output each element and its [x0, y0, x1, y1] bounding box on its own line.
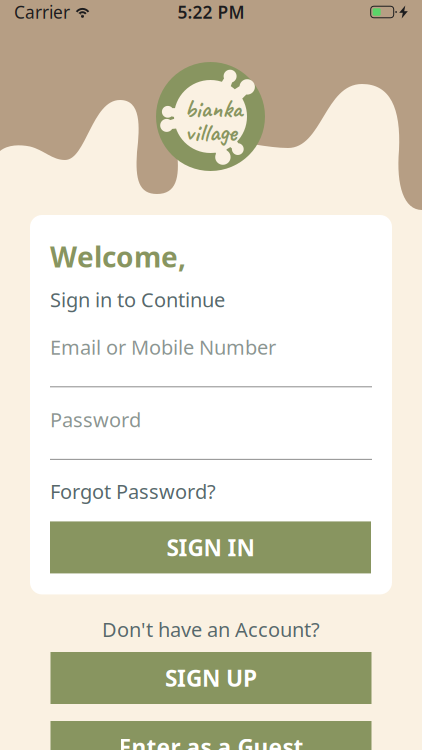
- staticText: village: [185, 116, 236, 148]
- staticText: Forgot Password?: [50, 478, 216, 504]
- staticText: Email or Mobile Number: [50, 334, 276, 360]
- staticText: bianka: [184, 93, 242, 124]
- staticText: Welcome,: [50, 238, 186, 275]
- staticText: 5:22 PM: [177, 0, 244, 23]
- staticText: Sign in to Continue: [50, 286, 225, 313]
- staticText: SIGN IN: [166, 532, 254, 562]
- button[interactable]: SIGN UP: [50, 652, 371, 704]
- button[interactable]: SIGN IN: [50, 521, 371, 573]
- staticText: Password: [50, 406, 141, 433]
- staticText: SIGN UP: [165, 663, 257, 693]
- staticText: Don't have an Account?: [102, 616, 320, 643]
- button[interactable]: Enter as a Guest: [50, 721, 371, 750]
- staticText: Enter as a Guest: [118, 732, 303, 750]
- button[interactable]: Forgot Password?: [50, 478, 216, 504]
- staticText: Carrier: [14, 0, 70, 23]
